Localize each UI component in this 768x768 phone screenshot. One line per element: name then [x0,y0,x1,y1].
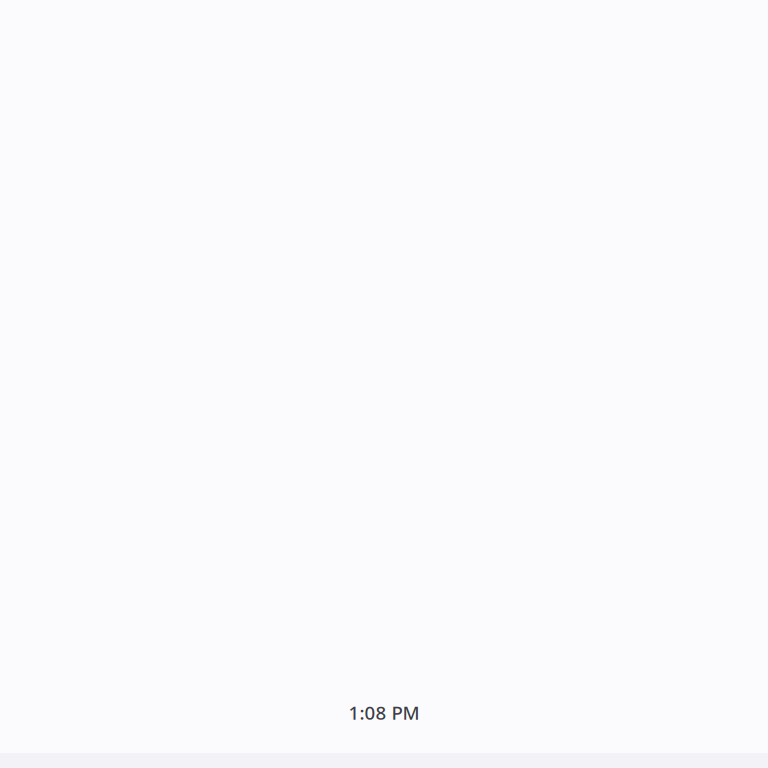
staticText: 1:08 PM [348,700,419,725]
